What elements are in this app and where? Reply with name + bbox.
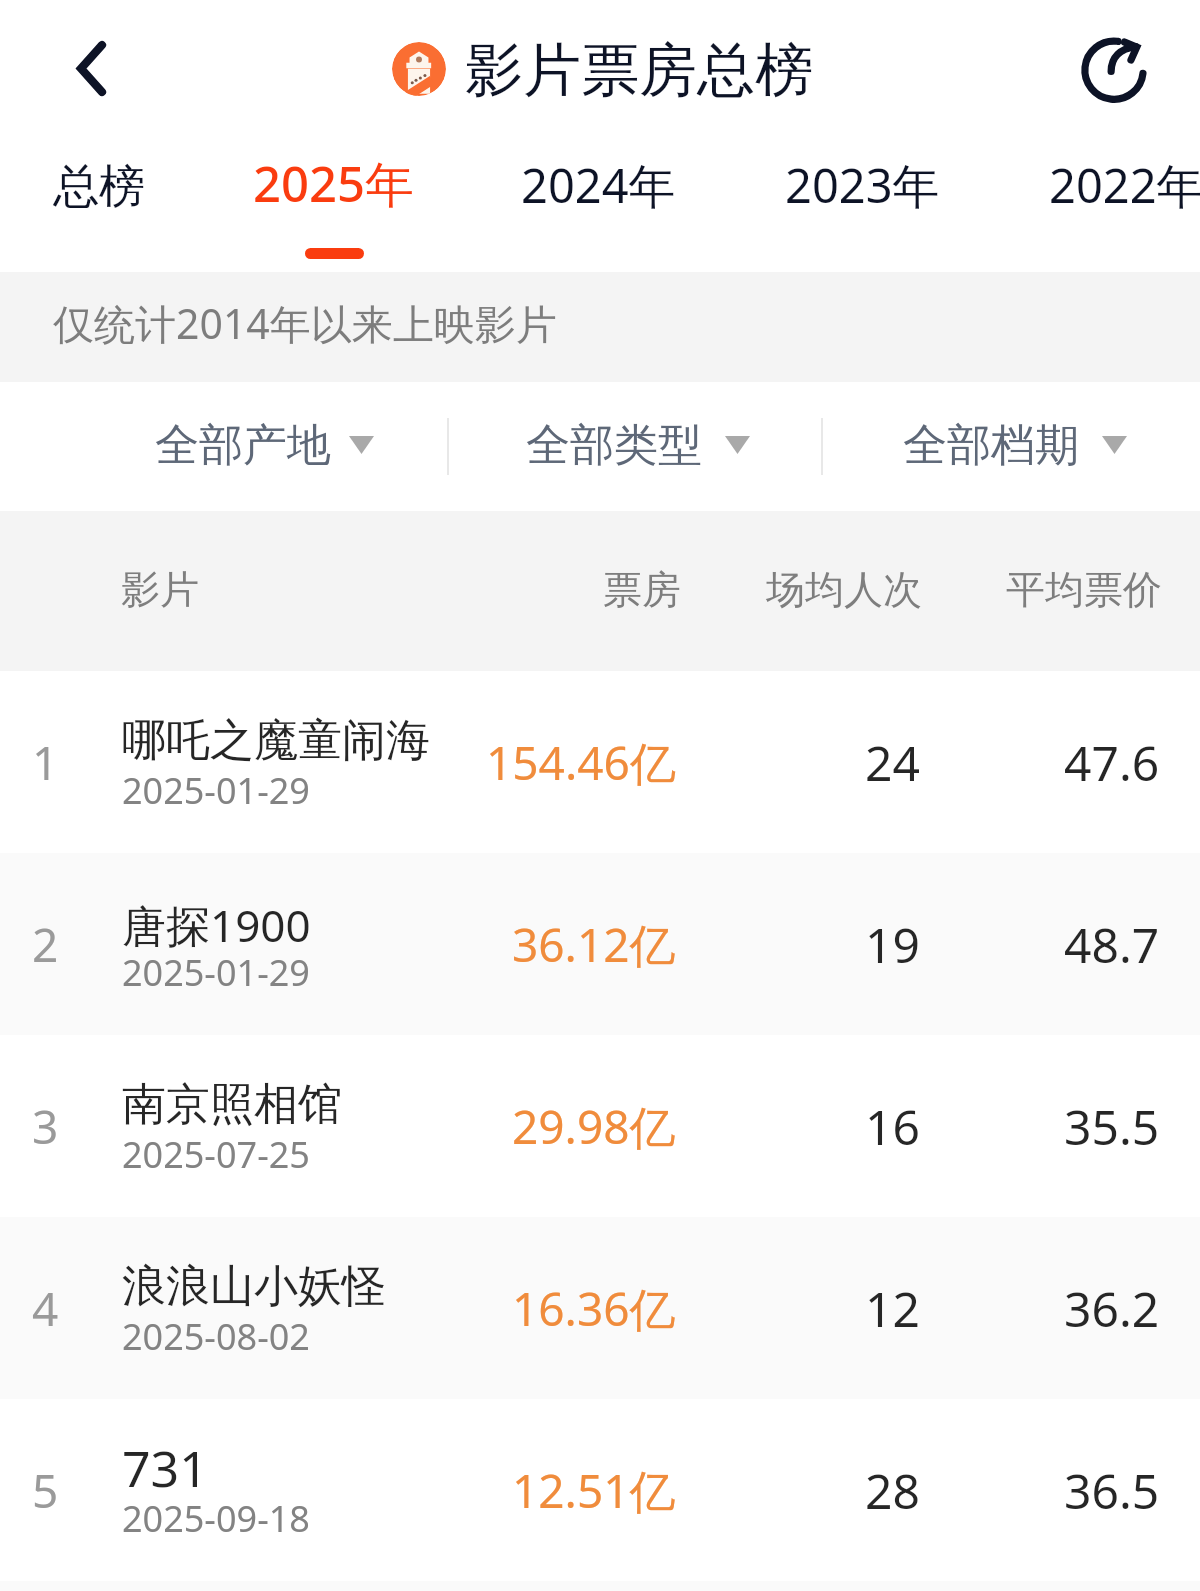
staticText: 28 xyxy=(865,1458,920,1523)
staticText: 总榜 xyxy=(53,158,145,216)
staticText: 12.51亿 xyxy=(512,1459,676,1522)
button[interactable]: 全部类型 xyxy=(526,382,751,511)
staticText: 47.6 xyxy=(1064,730,1160,795)
button[interactable]: 2 xyxy=(0,853,1200,1035)
button[interactable]: 2023年 xyxy=(757,136,967,272)
staticText: 2 xyxy=(32,913,59,976)
button[interactable]: 全部产地 xyxy=(155,382,375,511)
button[interactable]: 2022年 xyxy=(1021,136,1200,272)
button[interactable]: Back xyxy=(47,24,135,112)
button[interactable]: 4 xyxy=(0,1217,1200,1399)
staticText: 2025-09-18 xyxy=(122,1494,310,1543)
staticText: 24 xyxy=(865,730,920,795)
staticText: 35.5 xyxy=(1064,1094,1160,1159)
staticText: 全部产地 xyxy=(155,418,331,473)
staticText: 2023年 xyxy=(785,153,940,217)
button[interactable]: 3 xyxy=(0,1035,1200,1217)
staticText: 36.12亿 xyxy=(512,913,676,976)
staticText: 16 xyxy=(865,1094,920,1159)
staticText: 影片 xyxy=(121,565,199,614)
staticText: 仅统计2014年以来上映影片 xyxy=(53,295,557,351)
staticText: 场均人次 xyxy=(766,565,922,614)
button[interactable]: 5 xyxy=(0,1399,1200,1581)
staticText: 全部档期 xyxy=(903,418,1079,473)
staticText: 29.98亿 xyxy=(512,1095,676,1158)
staticText: 影片票房总榜 xyxy=(465,34,813,107)
staticText: 平均票价 xyxy=(1006,565,1162,614)
staticText: 票房 xyxy=(603,565,681,614)
staticText: 731 xyxy=(122,1434,208,1502)
staticText: 2025-08-02 xyxy=(122,1312,310,1361)
staticText: 19 xyxy=(865,912,920,977)
button[interactable]: 全部档期 xyxy=(903,382,1128,511)
staticText: 16.36亿 xyxy=(512,1277,676,1340)
staticText: 48.7 xyxy=(1064,912,1160,977)
button[interactable]: 总榜 xyxy=(0,136,204,272)
staticText: 1 xyxy=(32,731,59,794)
button[interactable]: 1 xyxy=(0,671,1200,853)
staticText: 2025-07-25 xyxy=(122,1130,310,1179)
staticText: 全部类型 xyxy=(526,418,702,473)
staticText: 2025年 xyxy=(253,150,415,217)
staticText: 3 xyxy=(32,1095,59,1158)
staticText: 5 xyxy=(32,1459,59,1522)
staticText: 2025-01-29 xyxy=(122,766,310,815)
staticText: 唐探1900 xyxy=(122,895,311,955)
staticText: 浪浪山小妖怪 xyxy=(122,1259,386,1314)
staticText: 4 xyxy=(32,1277,59,1340)
staticText: 南京照相馆 xyxy=(122,1077,342,1132)
staticText: 36.5 xyxy=(1064,1458,1160,1523)
staticText: 哪吒之魔童闹海 xyxy=(122,713,430,768)
staticText: 12 xyxy=(865,1276,920,1341)
staticText: 36.2 xyxy=(1064,1276,1160,1341)
staticText: 2022年 xyxy=(1049,153,1200,217)
staticText: 2025-01-29 xyxy=(122,948,310,997)
staticText: 154.46亿 xyxy=(486,731,676,794)
button[interactable]: Share xyxy=(1068,22,1160,114)
button[interactable]: 2024年 xyxy=(493,136,703,272)
staticText: 2024年 xyxy=(521,153,676,217)
button[interactable]: 2025年 xyxy=(229,136,439,272)
